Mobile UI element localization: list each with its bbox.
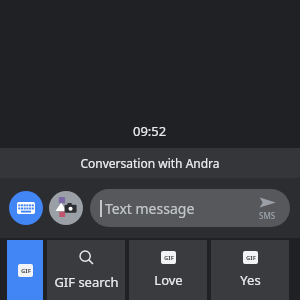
button[interactable]: Text message	[90, 189, 290, 227]
staticText: Yes	[240, 271, 261, 289]
staticText: GIF	[164, 254, 174, 262]
button[interactable]: Conversation with Andra	[0, 148, 300, 178]
staticText: Conversation with Andra	[80, 155, 220, 171]
button[interactable]: GIF	[129, 240, 207, 300]
button[interactable]: GIF	[211, 240, 289, 300]
button[interactable]: Camera	[49, 191, 83, 225]
staticText: GIF	[246, 254, 256, 262]
button[interactable]: GIF	[7, 240, 43, 300]
staticText: Text message	[105, 199, 195, 218]
staticText: Love	[154, 271, 183, 289]
button[interactable]: GIF search	[47, 240, 125, 300]
button[interactable]: Send SMS	[252, 189, 282, 227]
staticText: 09:52	[133, 122, 167, 140]
staticText: SMS	[259, 210, 276, 221]
staticText: GIF search	[54, 273, 119, 291]
staticText: GIF	[21, 267, 31, 275]
button[interactable]: Keyboard	[9, 191, 43, 225]
